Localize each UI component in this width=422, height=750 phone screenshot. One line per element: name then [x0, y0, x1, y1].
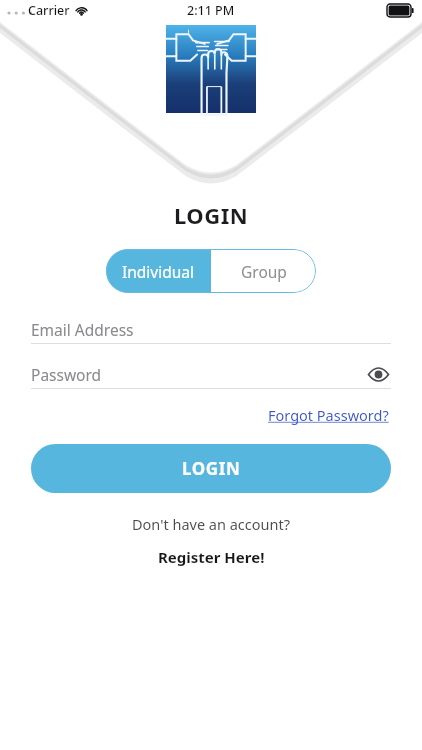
button[interactable]: Group	[211, 249, 316, 293]
staticText: Email Address	[31, 319, 134, 340]
staticText: Password	[31, 364, 102, 385]
button[interactable]: Password	[31, 360, 391, 389]
staticText: LOGIN	[182, 457, 241, 480]
staticText: Register Here!	[158, 547, 265, 567]
button[interactable]: Individual	[106, 249, 211, 293]
button[interactable]: Show password	[365, 361, 391, 387]
staticText: Forgot Password?	[268, 405, 389, 425]
staticText: Group	[241, 261, 287, 282]
button[interactable]: Email Address	[31, 315, 391, 344]
staticText: Don't have an account?	[132, 514, 290, 534]
staticText: Carrier	[28, 2, 70, 19]
button[interactable]: LOGIN	[31, 444, 391, 493]
button[interactable]: Register Here!	[152, 545, 271, 569]
staticText: LOGIN	[174, 200, 249, 230]
button[interactable]: Forgot Password?	[266, 403, 391, 427]
staticText: Individual	[122, 261, 195, 282]
staticText: 2:11 PM	[187, 2, 235, 19]
